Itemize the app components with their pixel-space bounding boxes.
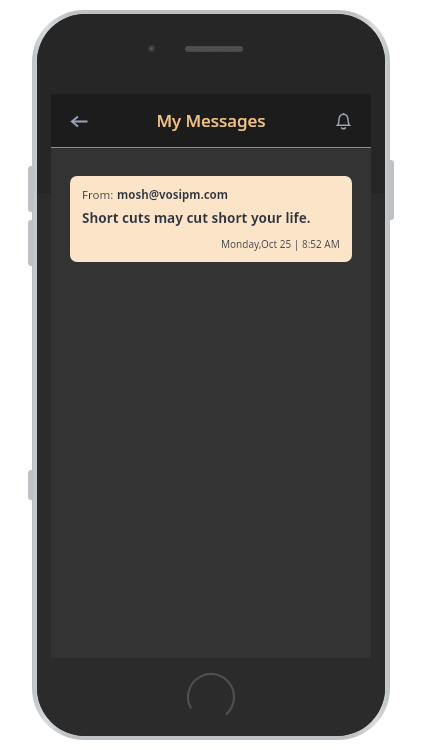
staticText: Short cuts may cut short your life.: [82, 209, 311, 227]
staticText: My Messages: [156, 109, 266, 132]
staticText: Monday,Oct 25 | 8:52 AM: [221, 237, 340, 251]
staticText: From:: [82, 187, 117, 203]
staticText: mosh@vosipm.com: [117, 187, 228, 203]
button[interactable]: Back: [61, 103, 97, 139]
button[interactable]: Notifications: [325, 103, 361, 139]
button[interactable]: From:: [70, 176, 352, 262]
